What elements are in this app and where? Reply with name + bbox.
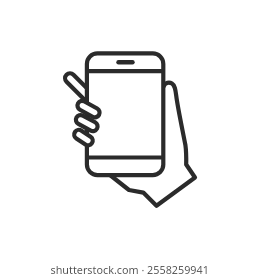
- button[interactable]: Hand holding a smartphone: [0, 0, 260, 280]
